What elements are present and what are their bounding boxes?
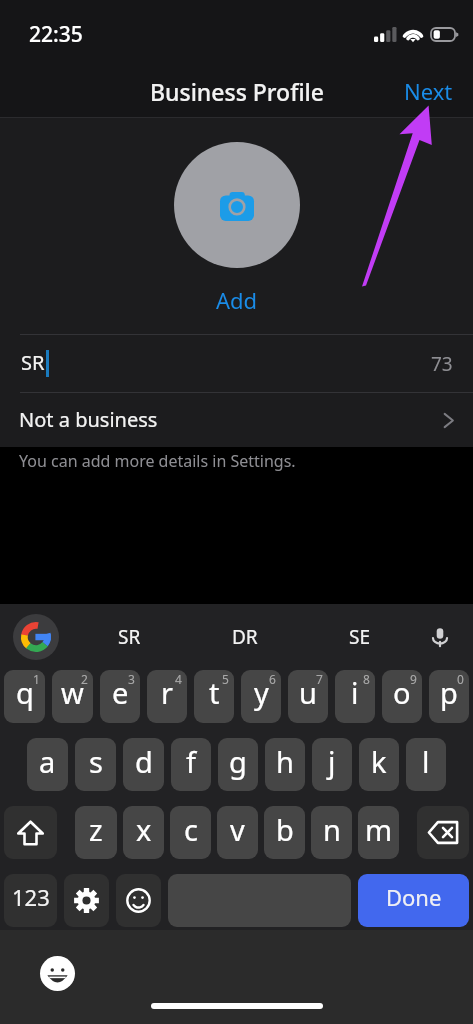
staticText: Add bbox=[216, 285, 258, 315]
button[interactable]: Google bbox=[13, 614, 59, 660]
staticText: w bbox=[61, 673, 84, 712]
staticText: 123 bbox=[12, 882, 50, 912]
staticText: 5 bbox=[222, 671, 229, 687]
staticText: l bbox=[422, 742, 430, 781]
staticText: SE bbox=[349, 624, 370, 650]
staticText: 2 bbox=[81, 671, 88, 687]
button[interactable]: l bbox=[406, 738, 446, 791]
staticText: p bbox=[440, 673, 458, 712]
button[interactable]: g bbox=[218, 738, 258, 791]
button[interactable]: q bbox=[4, 670, 45, 723]
button[interactable]: c bbox=[170, 806, 211, 859]
button[interactable]: Not a business bbox=[0, 393, 473, 447]
staticText: Not a business bbox=[19, 406, 158, 433]
staticText: You can add more details in Settings. bbox=[19, 450, 296, 472]
button[interactable]: Settings bbox=[64, 874, 109, 927]
button[interactable]: DR bbox=[187, 604, 302, 670]
button[interactable]: o bbox=[382, 670, 422, 723]
button[interactable]: m bbox=[358, 806, 399, 859]
button[interactable]: Add photo bbox=[174, 142, 300, 268]
button[interactable]: h bbox=[265, 738, 305, 791]
staticText: SR bbox=[118, 624, 141, 650]
button[interactable]: i bbox=[335, 670, 375, 723]
button[interactable]: SR bbox=[0, 335, 473, 392]
staticText: 9 bbox=[410, 671, 417, 687]
button[interactable]: Backspace bbox=[417, 806, 469, 859]
staticText: g bbox=[229, 742, 247, 781]
staticText: 0 bbox=[457, 671, 464, 687]
button[interactable]: a bbox=[27, 738, 68, 791]
button[interactable]: u bbox=[288, 670, 328, 723]
staticText: e bbox=[112, 673, 129, 712]
button[interactable]: b bbox=[264, 806, 305, 859]
staticText: SR bbox=[21, 349, 45, 376]
staticText: 1 bbox=[33, 671, 40, 687]
staticText: 22:35 bbox=[29, 20, 83, 49]
staticText: Done bbox=[386, 882, 442, 912]
staticText: d bbox=[135, 742, 153, 781]
button[interactable]: f bbox=[171, 738, 211, 791]
staticText: j bbox=[328, 742, 336, 781]
staticText: u bbox=[299, 673, 317, 712]
staticText: 6 bbox=[269, 671, 276, 687]
button[interactable]: Done bbox=[358, 874, 469, 927]
button[interactable]: SR bbox=[71, 604, 187, 670]
staticText: y bbox=[254, 673, 269, 712]
button[interactable]: 123 bbox=[4, 874, 57, 927]
staticText: n bbox=[323, 810, 341, 849]
button[interactable]: r bbox=[147, 670, 187, 723]
staticText: q bbox=[16, 673, 34, 712]
button[interactable]: Add bbox=[210, 279, 264, 321]
button[interactable]: x bbox=[123, 806, 164, 859]
staticText: k bbox=[371, 742, 387, 781]
staticText: b bbox=[276, 810, 294, 849]
button[interactable]: Next bbox=[387, 68, 473, 114]
button[interactable]: w bbox=[52, 670, 93, 723]
staticText: i bbox=[351, 673, 359, 712]
button[interactable]: SE bbox=[302, 604, 417, 670]
button[interactable]: Space bbox=[168, 874, 351, 927]
button[interactable]: e bbox=[100, 670, 140, 723]
button[interactable]: y bbox=[241, 670, 281, 723]
staticText: m bbox=[365, 810, 393, 849]
staticText: 7 bbox=[316, 671, 323, 687]
staticText: c bbox=[184, 810, 198, 849]
staticText: x bbox=[136, 810, 152, 849]
staticText: h bbox=[276, 742, 294, 781]
staticText: f bbox=[186, 742, 196, 781]
staticText: r bbox=[161, 673, 173, 712]
staticText: o bbox=[393, 673, 411, 712]
staticText: v bbox=[230, 810, 245, 849]
button[interactable]: k bbox=[359, 738, 399, 791]
button[interactable]: d bbox=[123, 738, 164, 791]
staticText: 8 bbox=[363, 671, 370, 687]
button[interactable]: p bbox=[429, 670, 469, 723]
staticText: s bbox=[89, 742, 103, 781]
staticText: 73 bbox=[431, 351, 453, 377]
button[interactable]: t bbox=[194, 670, 234, 723]
button[interactable]: v bbox=[217, 806, 258, 859]
button[interactable]: j bbox=[312, 738, 352, 791]
button[interactable]: Emoji bbox=[116, 874, 161, 927]
button[interactable]: z bbox=[75, 806, 117, 859]
staticText: Business Profile bbox=[150, 76, 324, 107]
staticText: z bbox=[89, 810, 103, 849]
button[interactable]: n bbox=[311, 806, 352, 859]
staticText: Next bbox=[404, 76, 453, 106]
staticText: DR bbox=[232, 624, 258, 650]
staticText: 3 bbox=[128, 671, 135, 687]
button[interactable]: Emoji bbox=[40, 956, 75, 991]
button[interactable]: s bbox=[75, 738, 116, 791]
staticText: a bbox=[39, 742, 56, 781]
button[interactable]: Voice input bbox=[423, 620, 457, 654]
staticText: t bbox=[209, 673, 220, 712]
button[interactable]: Shift bbox=[4, 806, 57, 859]
staticText: 4 bbox=[175, 671, 182, 687]
